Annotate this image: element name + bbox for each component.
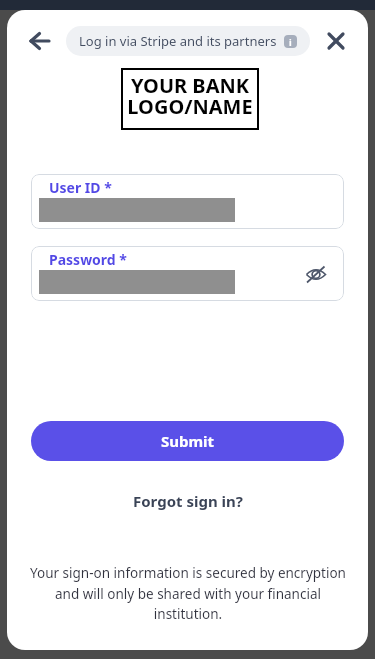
button[interactable]: User ID * <box>31 174 344 229</box>
button[interactable] <box>320 26 352 56</box>
staticText: Password * <box>49 250 127 269</box>
staticText: YOUR BANK LOGO/NAME <box>127 72 253 120</box>
button[interactable] <box>303 261 329 287</box>
staticText: i <box>289 36 292 48</box>
staticText: Log in via Stripe and its partners <box>79 32 277 50</box>
staticText: Forgot sign in? <box>133 491 243 511</box>
staticText: Submit <box>161 431 215 451</box>
button[interactable]: Log in via Stripe and its partners <box>66 26 310 56</box>
staticText: Your sign-on information is secured by e… <box>30 564 346 623</box>
button[interactable]: Submit <box>31 421 344 461</box>
button[interactable]: Password * <box>31 246 344 301</box>
button[interactable] <box>23 26 55 56</box>
button[interactable]: Forgot sign in? <box>133 491 243 511</box>
staticText: User ID * <box>49 178 112 197</box>
